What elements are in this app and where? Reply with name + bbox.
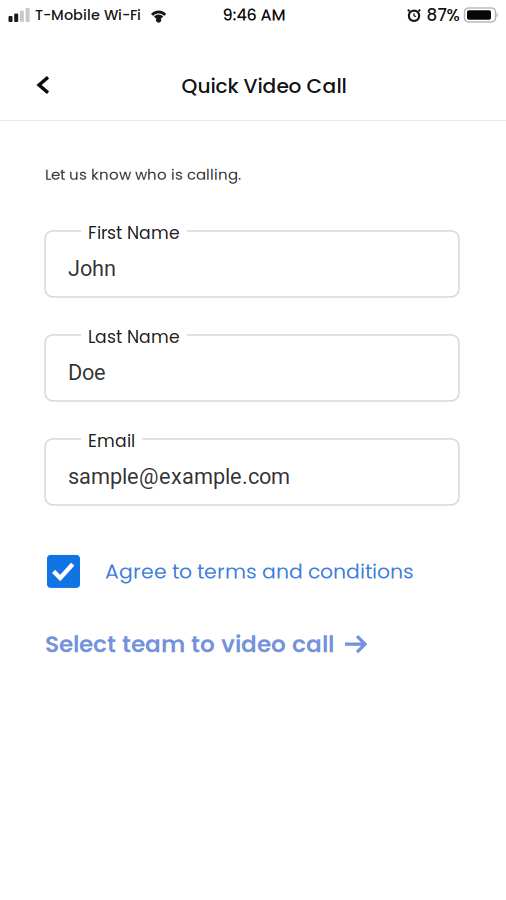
staticText: John <box>68 256 116 281</box>
staticText: T-Mobile Wi-Fi <box>35 5 141 25</box>
staticText: 87% <box>426 3 459 27</box>
button[interactable]: Back <box>0 65 66 105</box>
button[interactable]: First Name <box>45 219 459 297</box>
staticText: Select team to video call <box>45 628 334 660</box>
staticText: 9:46 AM <box>222 4 285 26</box>
button[interactable]: Last Name <box>45 323 459 401</box>
staticText: Email <box>88 429 135 453</box>
staticText: First Name <box>88 221 180 245</box>
button[interactable]: Agree to terms and conditions <box>45 555 414 588</box>
staticText: Agree to terms and conditions <box>105 557 414 586</box>
staticText: sample@example.com <box>68 464 290 489</box>
staticText: Quick Video Call <box>181 72 346 100</box>
staticText: Let us know who is calling. <box>45 164 241 185</box>
button[interactable]: Select team to video call <box>45 628 367 660</box>
button[interactable]: Email <box>45 427 459 505</box>
staticText: Doe <box>68 360 106 385</box>
staticText: Last Name <box>88 325 180 349</box>
